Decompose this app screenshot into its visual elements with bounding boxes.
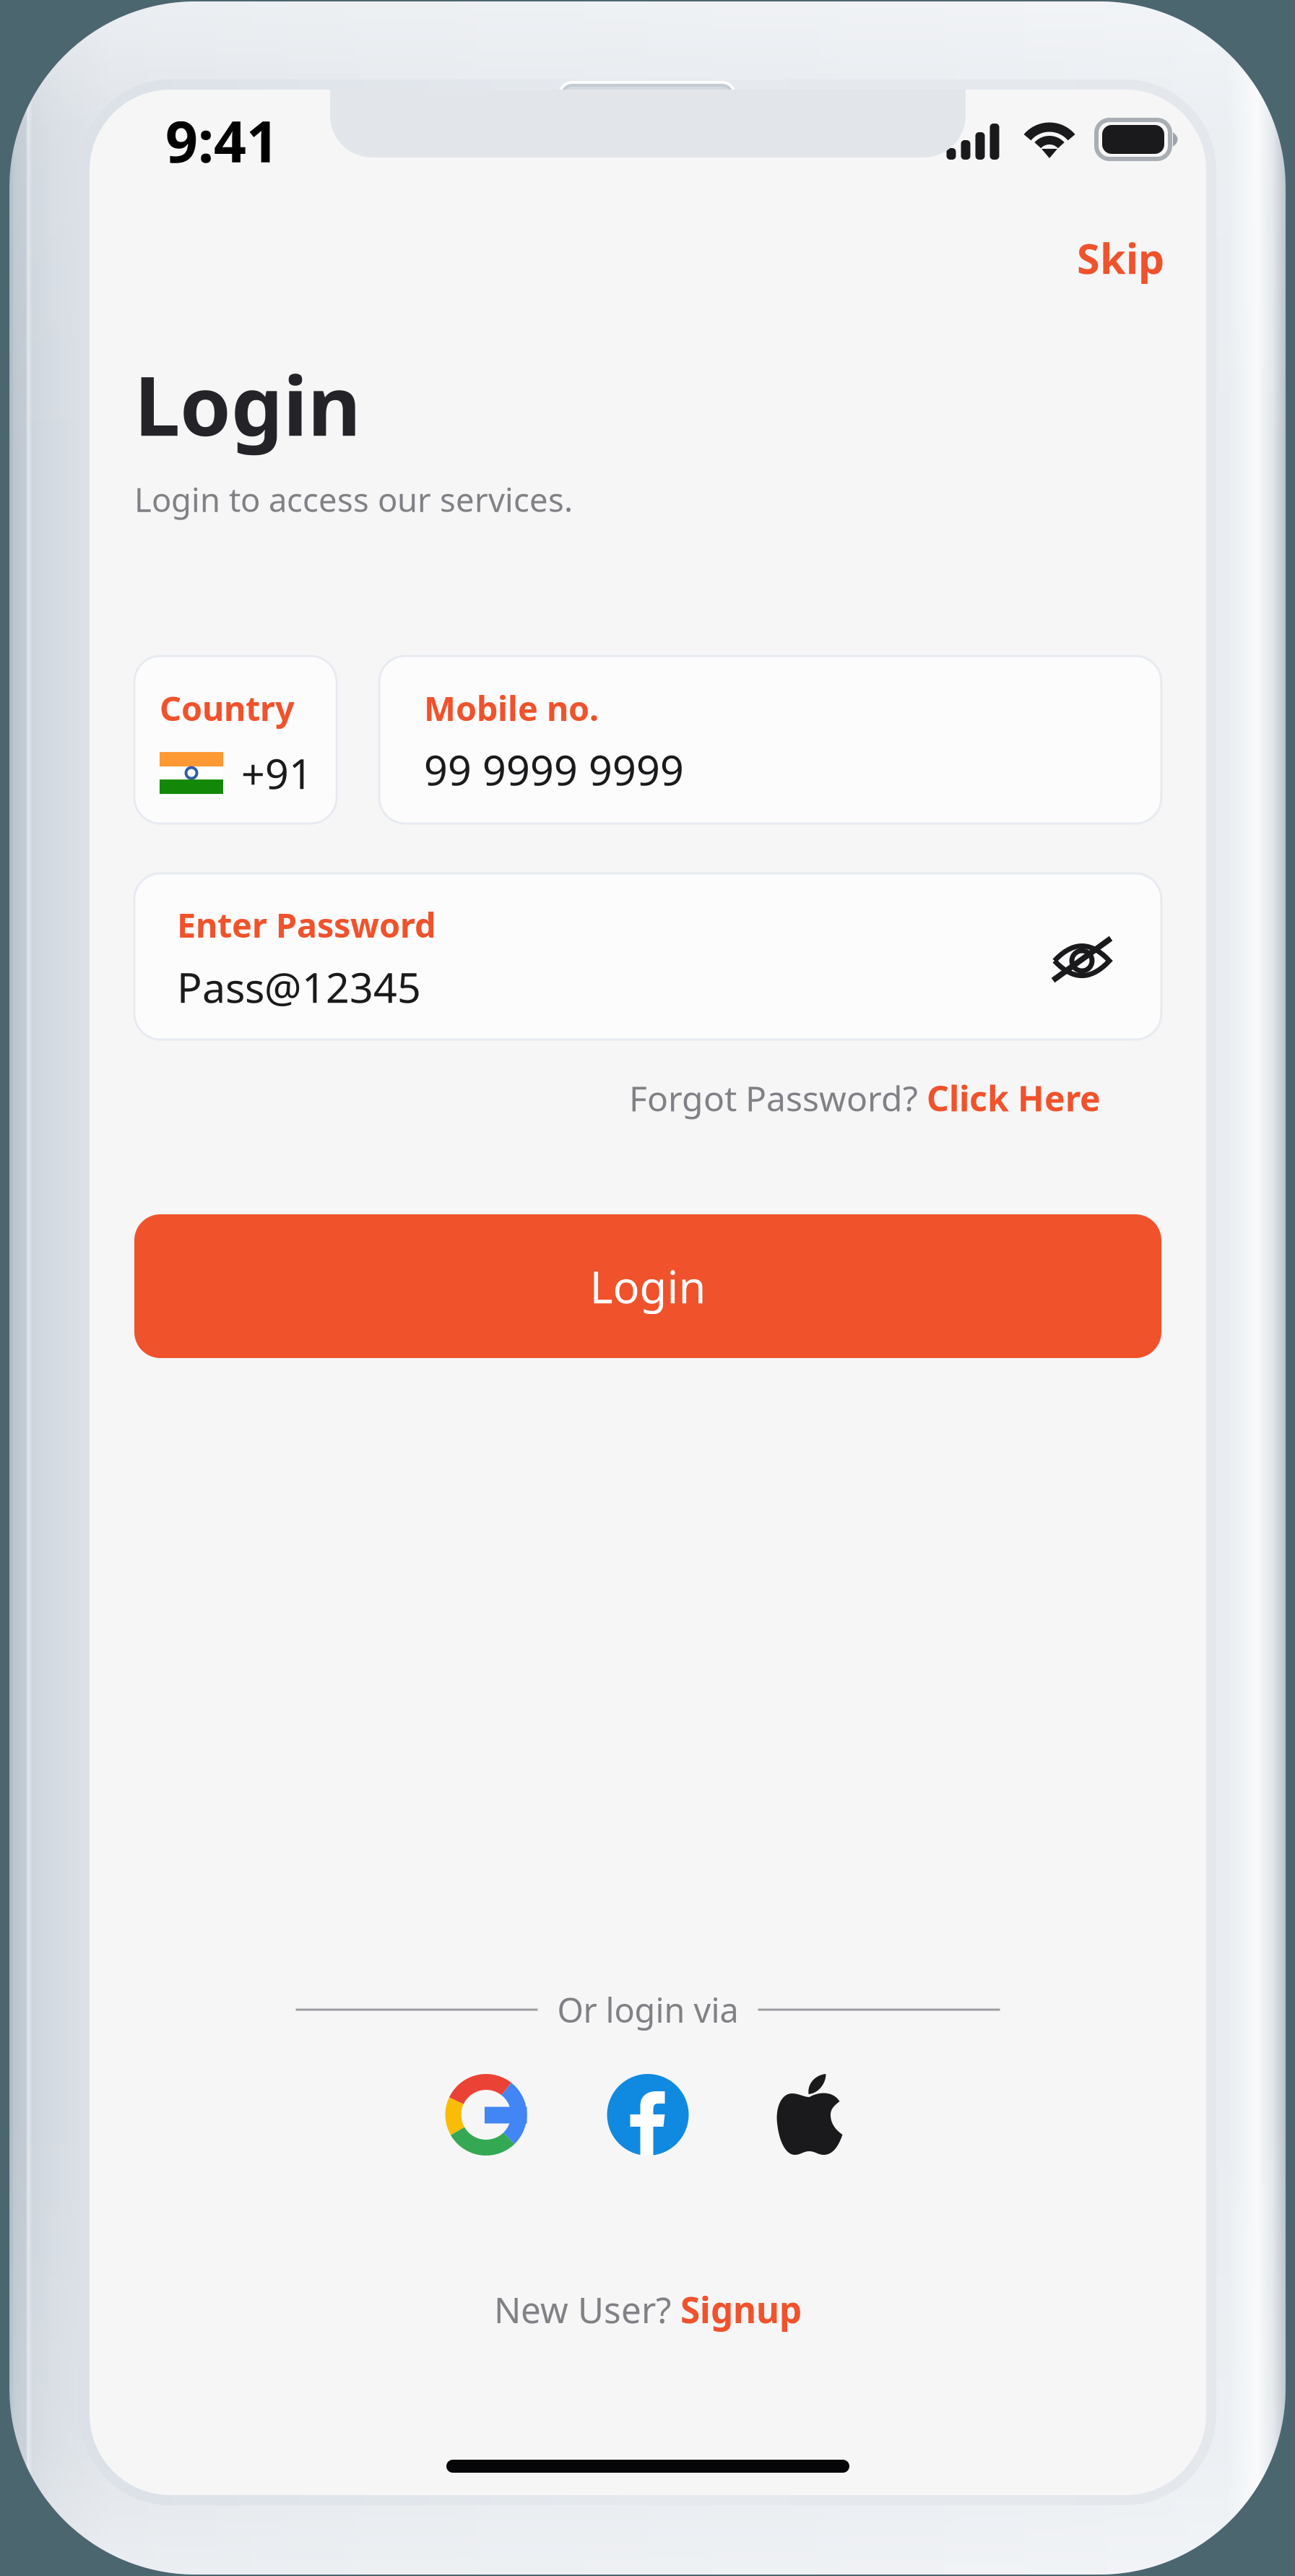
- staticText: Forgot Password?: [629, 1075, 927, 1121]
- button[interactable]: Continue with Apple: [769, 2074, 850, 2156]
- staticText: Or login via: [557, 1987, 739, 2032]
- staticText: Click Here: [927, 1075, 1101, 1121]
- staticText: New User?: [494, 2286, 680, 2333]
- staticText: Pass@12345: [177, 959, 421, 1014]
- button[interactable]: New User?: [494, 2277, 802, 2342]
- staticText: +91: [241, 745, 313, 800]
- button[interactable]: Country: [134, 656, 337, 824]
- staticText: Login: [134, 350, 361, 458]
- staticText: Signup: [680, 2286, 802, 2333]
- button[interactable]: Continue with Google: [445, 2074, 527, 2156]
- button[interactable]: Continue with Facebook: [607, 2074, 689, 2156]
- staticText: Mobile no.: [424, 686, 599, 730]
- staticText: Login: [590, 1257, 706, 1316]
- staticText: Enter Password: [177, 902, 436, 947]
- staticText: Skip: [1077, 230, 1164, 285]
- staticText: 9:41: [165, 103, 279, 178]
- button[interactable]: Show password: [1051, 904, 1113, 983]
- button[interactable]: Login: [134, 1214, 1161, 1358]
- staticText: Country: [160, 686, 295, 730]
- staticText: 99 9999 9999: [424, 742, 684, 797]
- button[interactable]: Forgot Password?: [629, 1068, 1101, 1128]
- button[interactable]: Skip: [1065, 220, 1176, 296]
- staticText: Login to access our services.: [134, 477, 573, 521]
